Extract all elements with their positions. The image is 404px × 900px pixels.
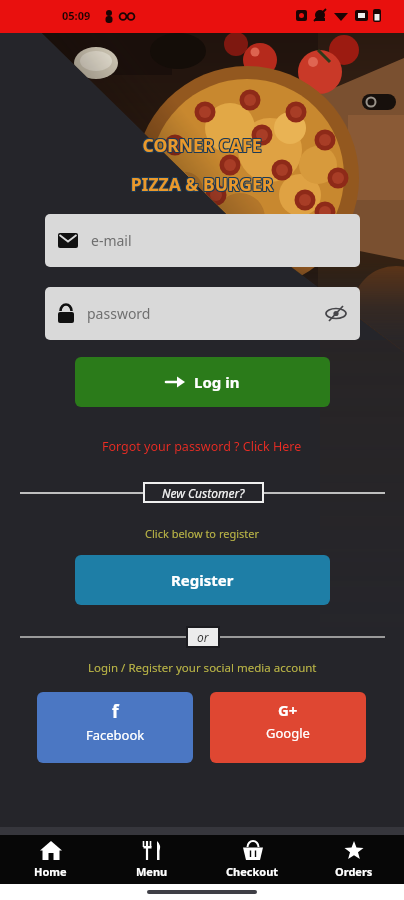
staticText: PIZZA & BURGER: [0, 172, 403, 196]
staticText: Facebook: [86, 726, 145, 744]
button[interactable]: Forgot your password ? Click Here: [102, 438, 302, 455]
staticText: CORNER CAFE: [0, 134, 403, 158]
staticText: Click below to register: [145, 526, 259, 541]
staticText: CORNER CAFE: [0, 133, 404, 157]
button[interactable]: Home: [0, 835, 101, 884]
staticText: or: [197, 629, 209, 645]
staticText: PIZZA & BURGER: [0, 172, 404, 196]
staticText: CORNER CAFE: [1, 132, 404, 156]
staticText: 05:09: [62, 8, 91, 23]
staticText: PIZZA & BURGER: [1, 172, 404, 196]
staticText: Log in: [194, 372, 240, 392]
staticText: Register: [171, 570, 234, 590]
button[interactable]: Register: [75, 555, 330, 605]
staticText: Home: [34, 864, 67, 879]
button[interactable]: Log in: [75, 357, 330, 407]
staticText: Checkout: [226, 864, 279, 879]
staticText: f: [112, 700, 119, 723]
staticText: password: [87, 304, 151, 323]
staticText: CORNER CAFE: [0, 133, 403, 157]
staticText: Orders: [335, 864, 373, 879]
staticText: PIZZA & BURGER: [0, 173, 404, 197]
staticText: Google: [266, 724, 310, 742]
staticText: PIZZA & BURGER: [1, 171, 404, 195]
staticText: CORNER CAFE: [0, 132, 404, 156]
staticText: New Customer?: [162, 485, 245, 501]
staticText: e-mail: [91, 231, 132, 250]
staticText: Login / Register your social media accou…: [88, 660, 317, 676]
staticText: PIZZA & BURGER: [1, 173, 404, 197]
button[interactable]: f: [37, 692, 193, 763]
staticText: Menu: [136, 864, 168, 879]
staticText: G+: [278, 700, 298, 720]
button[interactable]: Checkout: [202, 835, 303, 884]
button[interactable]: G+: [210, 692, 366, 763]
staticText: PIZZA & BURGER: [0, 171, 404, 195]
staticText: PIZZA & BURGER: [0, 171, 403, 195]
staticText: CORNER CAFE: [0, 134, 404, 158]
staticText: PIZZA & BURGER: [0, 173, 403, 197]
button[interactable]: e-mail: [45, 214, 360, 267]
button[interactable]: password: [45, 287, 360, 340]
button[interactable]: Menu: [101, 835, 202, 884]
button[interactable]: [325, 305, 347, 322]
staticText: CORNER CAFE: [0, 132, 403, 156]
button[interactable]: Orders: [303, 835, 404, 884]
staticText: CORNER CAFE: [1, 133, 404, 157]
staticText: CORNER CAFE: [1, 134, 404, 158]
